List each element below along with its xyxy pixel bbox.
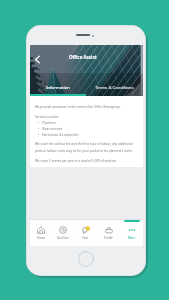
staticText: Terms & Conditions <box>95 85 134 91</box>
staticText: Electricians & Locksmiths <box>42 133 79 137</box>
staticText: Office Assist <box>69 54 97 60</box>
button[interactable]: Information <box>30 85 86 96</box>
staticText: We cover 3 events per year in a total of… <box>35 159 117 163</box>
staticText: • <box>38 121 40 125</box>
staticText: Chat <box>82 236 89 240</box>
staticText: Services include: <box>35 115 59 119</box>
button[interactable]: More <box>120 220 143 246</box>
staticText: • <box>38 127 40 131</box>
staticText: • <box>38 133 40 137</box>
staticText: Home <box>37 236 46 240</box>
button[interactable]: Get Care <box>52 220 74 246</box>
staticText: We cover the call out fee and the first … <box>35 142 139 153</box>
staticText: We provide assistance in the event of an… <box>35 105 121 109</box>
staticText: Information <box>46 85 70 91</box>
button[interactable]: Profile <box>97 220 120 246</box>
staticText: Profile <box>104 236 113 240</box>
button[interactable]: Home <box>30 220 52 246</box>
staticText: Glass services <box>42 127 63 131</box>
staticText: More <box>128 236 136 240</box>
button[interactable]: Back <box>31 53 44 66</box>
staticText: Get Care <box>57 236 69 240</box>
staticText: Plumbers <box>42 121 56 125</box>
button[interactable]: Terms & Conditions <box>86 85 143 96</box>
button[interactable]: Chat <box>74 220 97 246</box>
